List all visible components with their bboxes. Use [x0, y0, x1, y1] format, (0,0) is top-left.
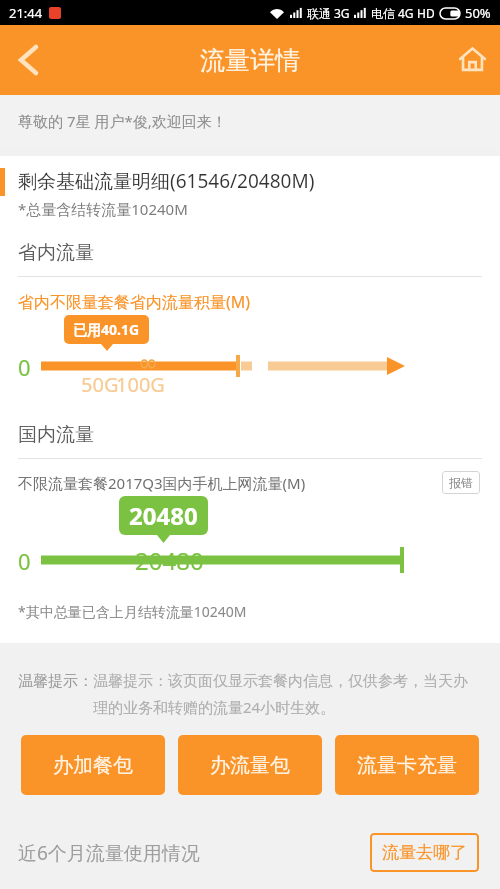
staticText: 温馨提示：该页面仅显示套餐内信息，仅供参考，当天办理的业务和转赠的流量24小时生…: [93, 672, 482, 717]
button[interactable]: 报错: [442, 471, 480, 494]
staticText: 20480: [129, 499, 198, 532]
staticText: HD: [417, 5, 435, 21]
staticText: 50%: [465, 4, 491, 22]
staticText: 省内不限量套餐省内流量积量(M): [18, 291, 251, 313]
button[interactable]: 办加餐包: [21, 735, 165, 795]
staticText: 报错: [449, 475, 473, 490]
staticText: 100G: [116, 371, 165, 398]
staticText: 已用40.1G: [73, 320, 140, 339]
staticText: 剩余基础流量明细(61546/20480M): [18, 168, 315, 194]
staticText: 办流量包: [210, 753, 290, 778]
staticText: 办加餐包: [53, 753, 133, 778]
button[interactable]: 流量去哪了: [370, 833, 479, 872]
staticText: 省内流量: [18, 241, 94, 265]
button[interactable]: 办流量包: [178, 735, 322, 795]
staticText: 电信: [371, 6, 395, 21]
button[interactable]: Home: [444, 25, 500, 95]
staticText: 21:44: [9, 4, 43, 22]
staticText: 0: [18, 352, 31, 382]
staticText: 0: [18, 546, 31, 576]
staticText: 3G: [334, 5, 350, 21]
staticText: 联通: [307, 6, 331, 21]
staticText: 国内流量: [18, 423, 94, 447]
staticText: 流量详情: [200, 45, 300, 76]
staticText: 近6个月流量使用情况: [18, 840, 370, 866]
staticText: 尊敬的 7星 用户*俊,欢迎回来！: [18, 111, 227, 131]
staticText: 50G: [81, 371, 119, 398]
button[interactable]: 流量卡充量: [335, 735, 479, 795]
staticText: 不限流量套餐2017Q3国内手机上网流量(M): [18, 473, 442, 493]
staticText: ∞: [138, 349, 158, 377]
staticText: 流量卡充量: [357, 753, 457, 778]
staticText: *总量含结转流量10240M: [18, 199, 188, 219]
staticText: 流量去哪了: [382, 842, 467, 863]
staticText: 20480: [135, 544, 204, 577]
staticText: *其中总量已含上月结转流量10240M: [18, 602, 247, 621]
button[interactable]: Back: [0, 25, 56, 95]
staticText: 4G: [398, 5, 414, 21]
staticText: 温馨提示：: [18, 672, 93, 691]
